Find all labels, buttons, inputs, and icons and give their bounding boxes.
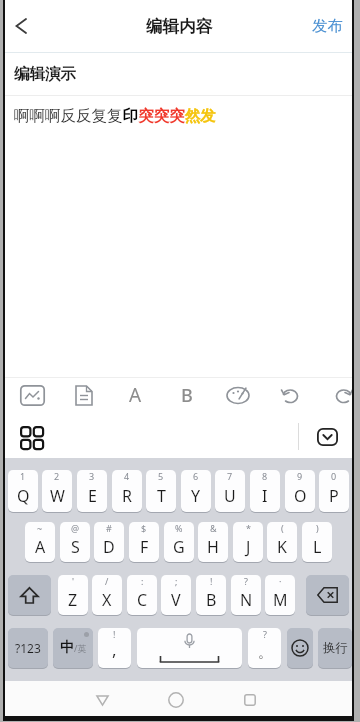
staticText: * — [246, 522, 251, 534]
staticText: ! — [113, 628, 116, 640]
button[interactable]: @ — [60, 522, 90, 562]
button[interactable]: A — [121, 380, 149, 410]
button[interactable]: ! — [98, 628, 131, 668]
button[interactable]: ( — [267, 522, 297, 562]
staticText: A — [129, 382, 142, 408]
button[interactable]: · — [265, 575, 295, 615]
button[interactable]: / — [92, 575, 122, 615]
button[interactable]: ? — [248, 628, 281, 668]
staticText: ) — [316, 522, 319, 534]
staticText: 0 — [331, 470, 337, 482]
staticText: 8 — [262, 470, 268, 482]
button[interactable]: 9 — [285, 470, 315, 512]
button[interactable]: : — [127, 575, 157, 615]
staticText: X — [102, 589, 112, 611]
button[interactable] — [317, 428, 338, 446]
button[interactable]: $ — [129, 522, 159, 562]
button[interactable]: B — [173, 380, 201, 410]
button[interactable]: ; — [161, 575, 191, 615]
staticText: ?123 — [15, 640, 41, 656]
button[interactable]: 7 — [215, 470, 245, 512]
staticText: H — [207, 536, 219, 558]
button[interactable]: 6 — [181, 470, 211, 512]
button[interactable] — [137, 628, 242, 668]
staticText: S — [71, 536, 80, 558]
button[interactable]: 2 — [42, 470, 72, 512]
staticText: % — [175, 522, 183, 534]
staticText: 中 — [60, 639, 74, 657]
staticText: L — [313, 536, 322, 558]
staticText: M — [273, 589, 288, 611]
button[interactable] — [306, 575, 349, 615]
staticText: C — [137, 589, 148, 611]
staticText: W — [50, 485, 65, 507]
staticText: 编辑演示 — [14, 64, 76, 84]
staticText: ? — [263, 628, 267, 640]
staticText: ! — [210, 575, 213, 587]
button[interactable] — [166, 690, 186, 710]
staticText: N — [240, 589, 253, 611]
staticText: B — [206, 589, 217, 611]
button[interactable]: 4 — [112, 470, 142, 512]
button[interactable]: % — [164, 522, 194, 562]
staticText: E — [88, 485, 97, 507]
staticText: D — [103, 536, 115, 558]
staticText: A — [35, 536, 46, 558]
button[interactable] — [18, 381, 46, 409]
staticText: 9 — [297, 470, 303, 482]
staticText: Q — [17, 485, 30, 507]
button[interactable]: ? — [231, 575, 261, 615]
button[interactable]: ' — [58, 575, 88, 615]
staticText: P — [329, 485, 339, 507]
button[interactable] — [6, 11, 36, 41]
staticText: 7 — [227, 470, 233, 482]
button[interactable] — [8, 575, 51, 615]
staticText: O — [294, 485, 307, 507]
button[interactable] — [20, 426, 43, 449]
button[interactable]: 3 — [77, 470, 107, 512]
button[interactable]: 换行 — [318, 628, 352, 668]
staticText: U — [224, 485, 236, 507]
staticText: · — [279, 575, 282, 587]
staticText: 换行 — [323, 640, 348, 656]
button[interactable]: 发布 — [312, 16, 343, 36]
button[interactable]: ?123 — [8, 628, 48, 668]
staticText: T — [157, 485, 166, 507]
staticText: /英 — [74, 642, 87, 654]
button[interactable]: * — [233, 522, 263, 562]
staticText: / — [105, 575, 109, 587]
button[interactable] — [240, 690, 260, 710]
staticText: 1 — [20, 470, 26, 482]
staticText: 6 — [193, 470, 199, 482]
staticText: G — [173, 536, 185, 558]
staticText: 2 — [54, 470, 60, 482]
staticText: R — [122, 485, 132, 507]
button[interactable]: 1 — [8, 470, 38, 512]
button[interactable]: # — [94, 522, 124, 562]
button[interactable]: ) — [302, 522, 332, 562]
button[interactable] — [276, 381, 304, 409]
staticText: : — [141, 575, 144, 587]
staticText: $ — [141, 522, 147, 534]
button[interactable] — [224, 381, 252, 409]
staticText: , — [112, 638, 117, 661]
button[interactable]: ~ — [25, 522, 55, 562]
staticText: ' — [72, 575, 75, 587]
staticText: ( — [281, 522, 284, 534]
staticText: # — [106, 522, 112, 534]
button[interactable]: & — [198, 522, 228, 562]
staticText: I — [262, 485, 268, 507]
staticText: & — [210, 522, 217, 534]
button[interactable]: ! — [196, 575, 226, 615]
button[interactable]: 5 — [146, 470, 176, 512]
button[interactable] — [330, 381, 352, 409]
button[interactable] — [70, 381, 98, 409]
staticText: ? — [244, 575, 248, 587]
staticText: ~ — [37, 522, 43, 534]
button[interactable]: 0 — [319, 470, 349, 512]
button[interactable] — [287, 628, 313, 668]
staticText: 4 — [124, 470, 130, 482]
button[interactable]: 中 — [53, 628, 93, 668]
button[interactable] — [92, 690, 112, 710]
button[interactable]: 8 — [250, 470, 280, 512]
